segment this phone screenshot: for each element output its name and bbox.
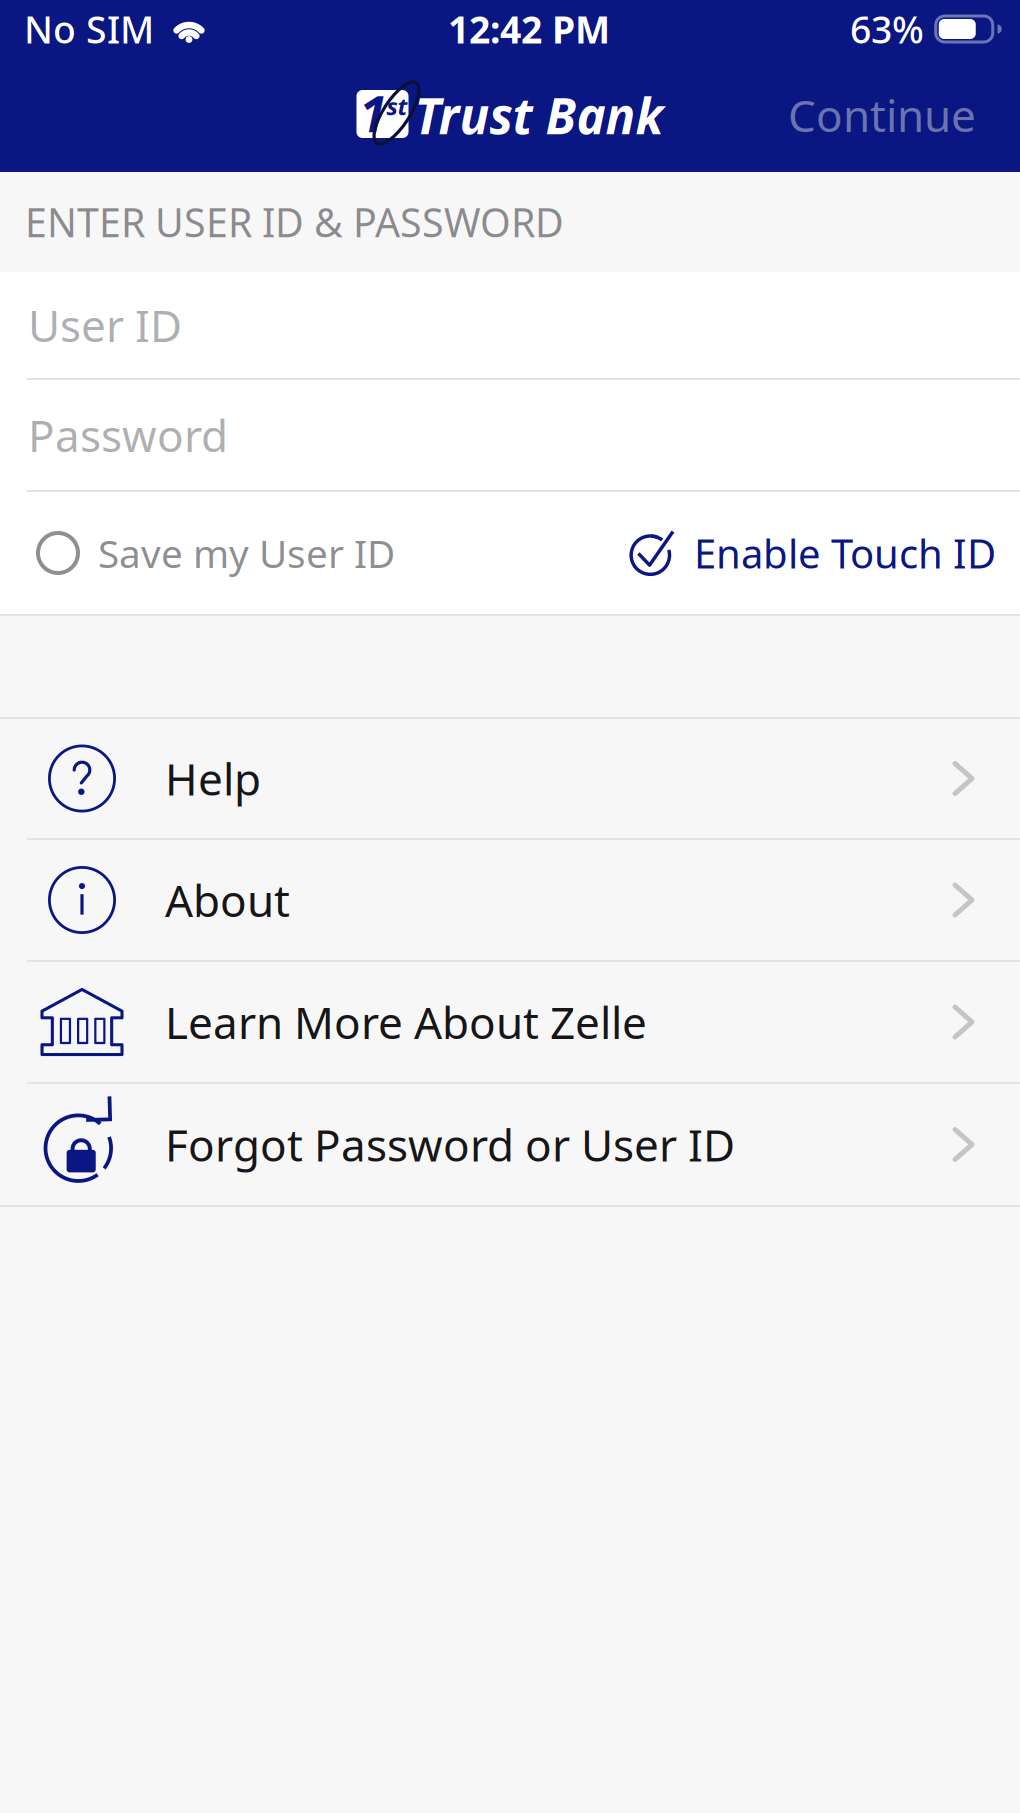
staticText: Password xyxy=(28,405,228,465)
button[interactable]: Save my User ID xyxy=(36,527,395,579)
button[interactable]: Help xyxy=(0,719,1020,840)
staticText: No SIM xyxy=(24,4,154,54)
staticText: Help xyxy=(165,748,261,808)
staticText: 63% xyxy=(850,4,924,54)
button[interactable]: About xyxy=(0,840,1020,962)
button[interactable]: Learn More About Zelle xyxy=(0,962,1020,1084)
staticText: Save my User ID xyxy=(98,527,395,579)
button[interactable]: Forgot Password or User ID xyxy=(0,1084,1020,1207)
staticText: ENTER USER ID & PASSWORD xyxy=(25,195,564,249)
staticText: Forgot Password or User ID xyxy=(165,1114,735,1174)
button[interactable]: Enable Touch ID xyxy=(628,526,996,580)
staticText: Enable Touch ID xyxy=(694,526,996,580)
staticText: st xyxy=(386,90,407,122)
staticText: Learn More About Zelle xyxy=(165,992,647,1052)
staticText: 1 xyxy=(359,79,386,147)
staticText: Continue xyxy=(788,85,976,145)
button[interactable]: Continue xyxy=(788,85,1020,145)
staticText: About xyxy=(165,870,290,930)
staticText: Trust Bank xyxy=(414,81,663,149)
staticText: 12:42 PM xyxy=(448,4,610,54)
staticText: User ID xyxy=(28,295,182,355)
